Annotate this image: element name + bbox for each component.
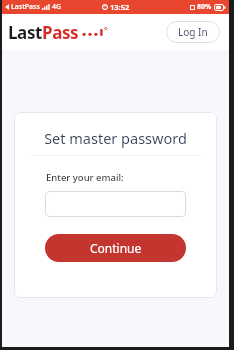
button[interactable]: Continue xyxy=(45,234,186,262)
staticText: 80% xyxy=(197,2,212,12)
staticText: Set master password xyxy=(44,128,187,148)
button[interactable]: Log In xyxy=(166,21,220,43)
staticText: Last xyxy=(8,21,42,44)
staticText: Log In xyxy=(178,25,208,39)
button[interactable]: LastPass home xyxy=(8,21,101,44)
staticText: LastPass xyxy=(11,2,40,12)
staticText: Continue xyxy=(90,240,142,256)
staticText: Enter your email: xyxy=(46,171,203,184)
staticText: Pass xyxy=(42,21,79,44)
staticText: 13:52 xyxy=(110,2,130,12)
staticText: 4G xyxy=(52,2,62,12)
button[interactable]: Email input field xyxy=(45,191,186,217)
